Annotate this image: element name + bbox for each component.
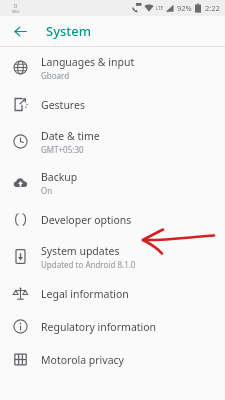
staticText: Regulatory information: [41, 320, 157, 334]
button[interactable]: Date & time: [0, 121, 225, 162]
button[interactable]: Regulatory information: [0, 310, 225, 343]
staticText: Developer options: [41, 213, 132, 227]
button[interactable]: Motorola privacy: [0, 343, 225, 376]
button[interactable]: Gestures: [0, 88, 225, 121]
staticText: Gestures: [41, 98, 85, 112]
button[interactable]: Languages & input: [0, 47, 225, 88]
staticText: 2:22: [205, 3, 220, 13]
staticText: Updated to Android 8.1.0: [41, 259, 136, 270]
staticText: Gboard: [41, 70, 70, 81]
staticText: 0: [14, 2, 18, 9]
staticText: GMT+05:30: [41, 144, 84, 155]
button[interactable]: Legal information: [0, 277, 225, 310]
button[interactable]: Developer options: [0, 203, 225, 236]
button[interactable]: System updates: [0, 236, 225, 277]
staticText: 92%: [177, 3, 192, 13]
staticText: Legal information: [41, 287, 129, 301]
staticText: Languages & input: [41, 55, 135, 69]
staticText: LTE: [156, 5, 164, 11]
staticText: Date & time: [41, 129, 100, 143]
staticText: Motorola privacy: [41, 353, 124, 367]
button[interactable]: Backup: [0, 162, 225, 203]
staticText: System: [46, 22, 92, 40]
staticText: KB/s: [12, 9, 20, 14]
staticText: Backup: [41, 170, 78, 184]
staticText: System updates: [41, 244, 120, 258]
button[interactable]: Back: [6, 17, 34, 45]
staticText: On: [41, 185, 53, 196]
